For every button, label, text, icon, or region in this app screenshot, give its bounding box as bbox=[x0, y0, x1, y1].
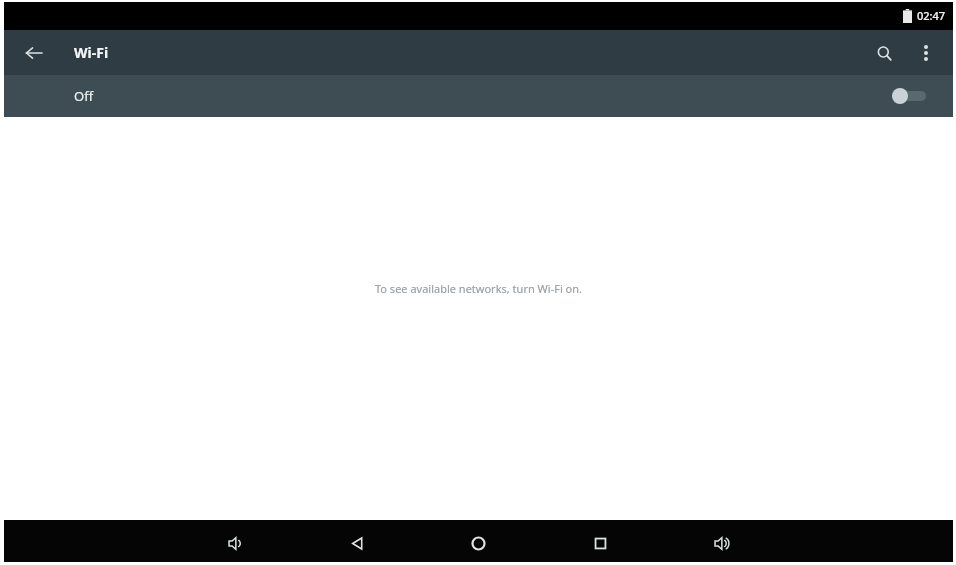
button[interactable]: Recents bbox=[580, 523, 620, 563]
button[interactable]: Back bbox=[337, 523, 377, 563]
button[interactable]: Search bbox=[866, 35, 902, 71]
button[interactable]: Volume down bbox=[215, 523, 255, 563]
staticText: Wi-Fi bbox=[74, 43, 109, 62]
button[interactable]: Wi-Fi toggle bbox=[892, 86, 926, 106]
button[interactable]: Volume up bbox=[701, 523, 741, 563]
staticText: To see available networks, turn Wi-Fi on… bbox=[375, 281, 582, 296]
staticText: 02:47 bbox=[917, 8, 946, 23]
button[interactable]: Back bbox=[16, 35, 52, 71]
staticText: Off bbox=[74, 87, 94, 105]
button[interactable]: More options bbox=[908, 35, 944, 71]
button[interactable]: Off bbox=[0, 75, 956, 117]
button[interactable]: Home bbox=[458, 523, 498, 563]
